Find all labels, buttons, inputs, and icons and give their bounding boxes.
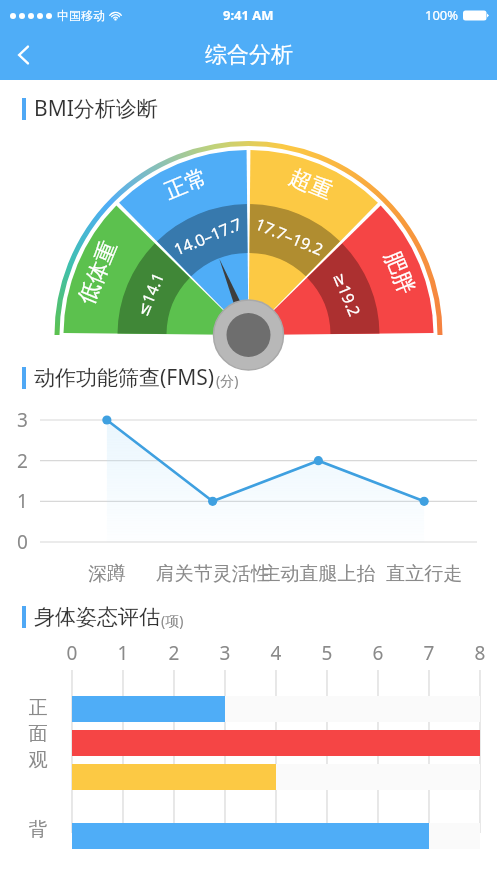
staticText: BMI分析诊断 xyxy=(34,94,158,123)
staticText: 9:41 AM xyxy=(223,6,274,24)
staticText: (分) xyxy=(216,371,239,390)
staticText: (项) xyxy=(161,611,184,630)
staticText: 身体姿态评估 xyxy=(34,604,160,630)
staticText: 综合分析 xyxy=(205,41,293,69)
button[interactable]: Back xyxy=(0,31,48,79)
staticText: 动作功能筛查(FMS) xyxy=(34,363,215,392)
staticText: 中国移动 xyxy=(57,8,105,23)
staticText: 100% xyxy=(425,6,459,24)
